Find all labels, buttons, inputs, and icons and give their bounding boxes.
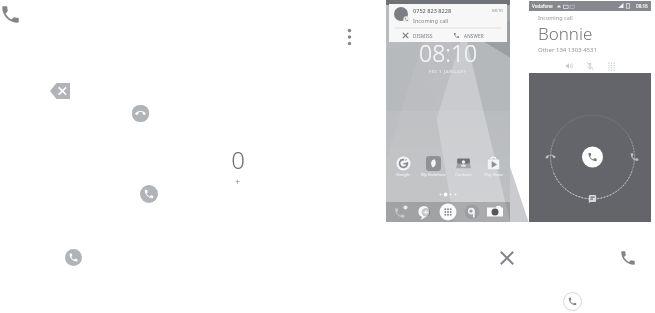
staticText: Bonnie <box>538 22 593 45</box>
button[interactable]: More options <box>344 28 355 47</box>
button[interactable]: Dial <box>618 248 638 268</box>
button[interactable]: Close <box>497 248 517 268</box>
staticText: DISMISS <box>413 33 433 39</box>
button[interactable]: 0752 823 8228 <box>389 4 507 42</box>
staticText: FRI 1 JANUARY <box>429 69 467 75</box>
button[interactable]: Chrome <box>464 204 480 220</box>
staticText: 0752 823 8228 <box>413 7 452 15</box>
staticText: 0 <box>231 143 245 176</box>
button[interactable]: Voicemail <box>140 185 158 203</box>
button[interactable]: Mute <box>584 60 596 72</box>
staticText: Google <box>396 172 410 177</box>
button[interactable]: 0 <box>225 143 250 187</box>
button[interactable]: Camera <box>487 204 503 220</box>
staticText: Contacts <box>455 172 472 177</box>
button[interactable]: My Vodafone <box>420 156 446 177</box>
staticText: My Vodafone <box>421 172 446 177</box>
staticText: + <box>235 176 240 187</box>
staticText: Play Store <box>484 172 503 177</box>
staticText: ANSWER <box>464 33 484 39</box>
button[interactable]: Messages <box>416 204 432 220</box>
button[interactable]: Backspace <box>50 83 70 99</box>
staticText: Vodafone <box>532 3 553 9</box>
button[interactable]: Phone <box>393 204 409 220</box>
button[interactable]: Answer call <box>563 292 582 311</box>
button[interactable]: Speaker <box>563 60 575 72</box>
staticText: 08:10 <box>492 8 503 14</box>
staticText: Incoming call <box>413 17 449 25</box>
button[interactable]: Contacts <box>450 156 476 177</box>
button[interactable]: All apps <box>439 203 457 221</box>
staticText: Other 134 1303 4531 <box>538 46 597 54</box>
button[interactable]: Call <box>0 3 22 25</box>
button[interactable]: DISMISS <box>402 29 448 42</box>
button[interactable]: Keypad <box>605 60 617 72</box>
button[interactable]: Google <box>390 156 416 177</box>
button[interactable]: ANSWER <box>453 29 507 42</box>
staticText: 08:16 <box>636 3 648 9</box>
staticText: 08:10 <box>419 37 478 68</box>
staticText: Incoming call <box>538 14 573 21</box>
button[interactable]: End call <box>132 105 149 122</box>
button[interactable]: Call history <box>65 249 82 266</box>
button[interactable]: Play Store <box>480 156 506 177</box>
